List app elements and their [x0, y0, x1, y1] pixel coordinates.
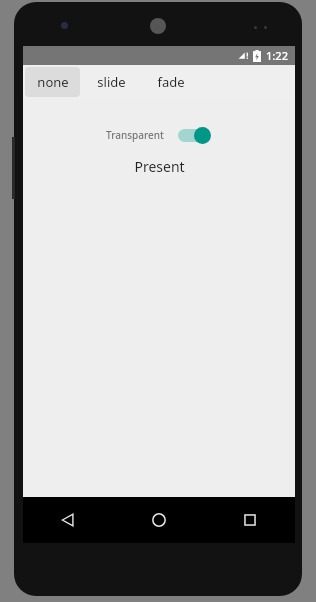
button[interactable]: Back	[23, 497, 113, 543]
button[interactable]: none	[25, 67, 80, 97]
button[interactable]: Transparent toggle	[177, 125, 212, 145]
button[interactable]: fade	[143, 67, 198, 97]
staticText: 1:22	[266, 48, 288, 63]
staticText: Transparent	[106, 128, 164, 142]
staticText: none	[37, 73, 69, 91]
button[interactable]: Transparent	[106, 125, 212, 145]
button[interactable]: slide	[84, 67, 139, 97]
button[interactable]: Recents	[204, 497, 295, 543]
staticText: fade	[157, 73, 185, 91]
staticText: Present	[134, 157, 185, 176]
staticText: slide	[97, 73, 126, 91]
button[interactable]: Home	[113, 497, 204, 543]
